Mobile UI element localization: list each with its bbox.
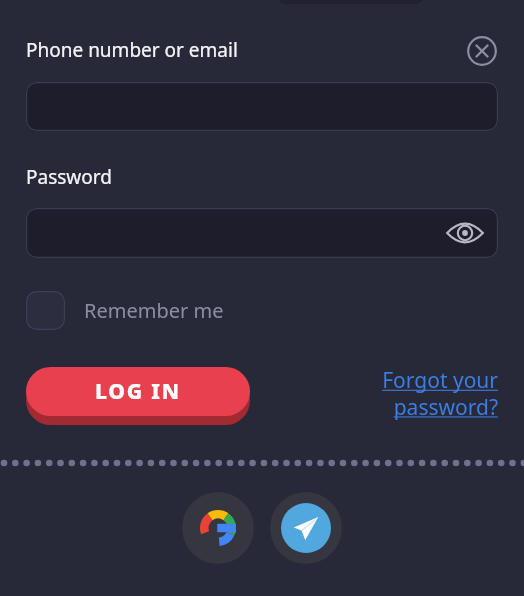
button[interactable]: Sign in with Google [182,492,254,564]
staticText: LOG IN [95,377,181,406]
button[interactable]: Clear [462,31,502,71]
button[interactable]: Forgot your password? [338,366,498,421]
staticText: Phone number or email [26,37,238,63]
button[interactable]: Sign in with Telegram [270,492,342,564]
button[interactable]: LOG IN [26,367,250,425]
staticText: Remember me [84,297,224,324]
button[interactable] [26,82,498,131]
button[interactable]: Remember me [26,290,224,331]
button[interactable] [26,208,498,258]
button[interactable]: Show password [443,214,487,252]
staticText: Password [26,164,112,190]
staticText: Forgot your password? [338,366,498,421]
